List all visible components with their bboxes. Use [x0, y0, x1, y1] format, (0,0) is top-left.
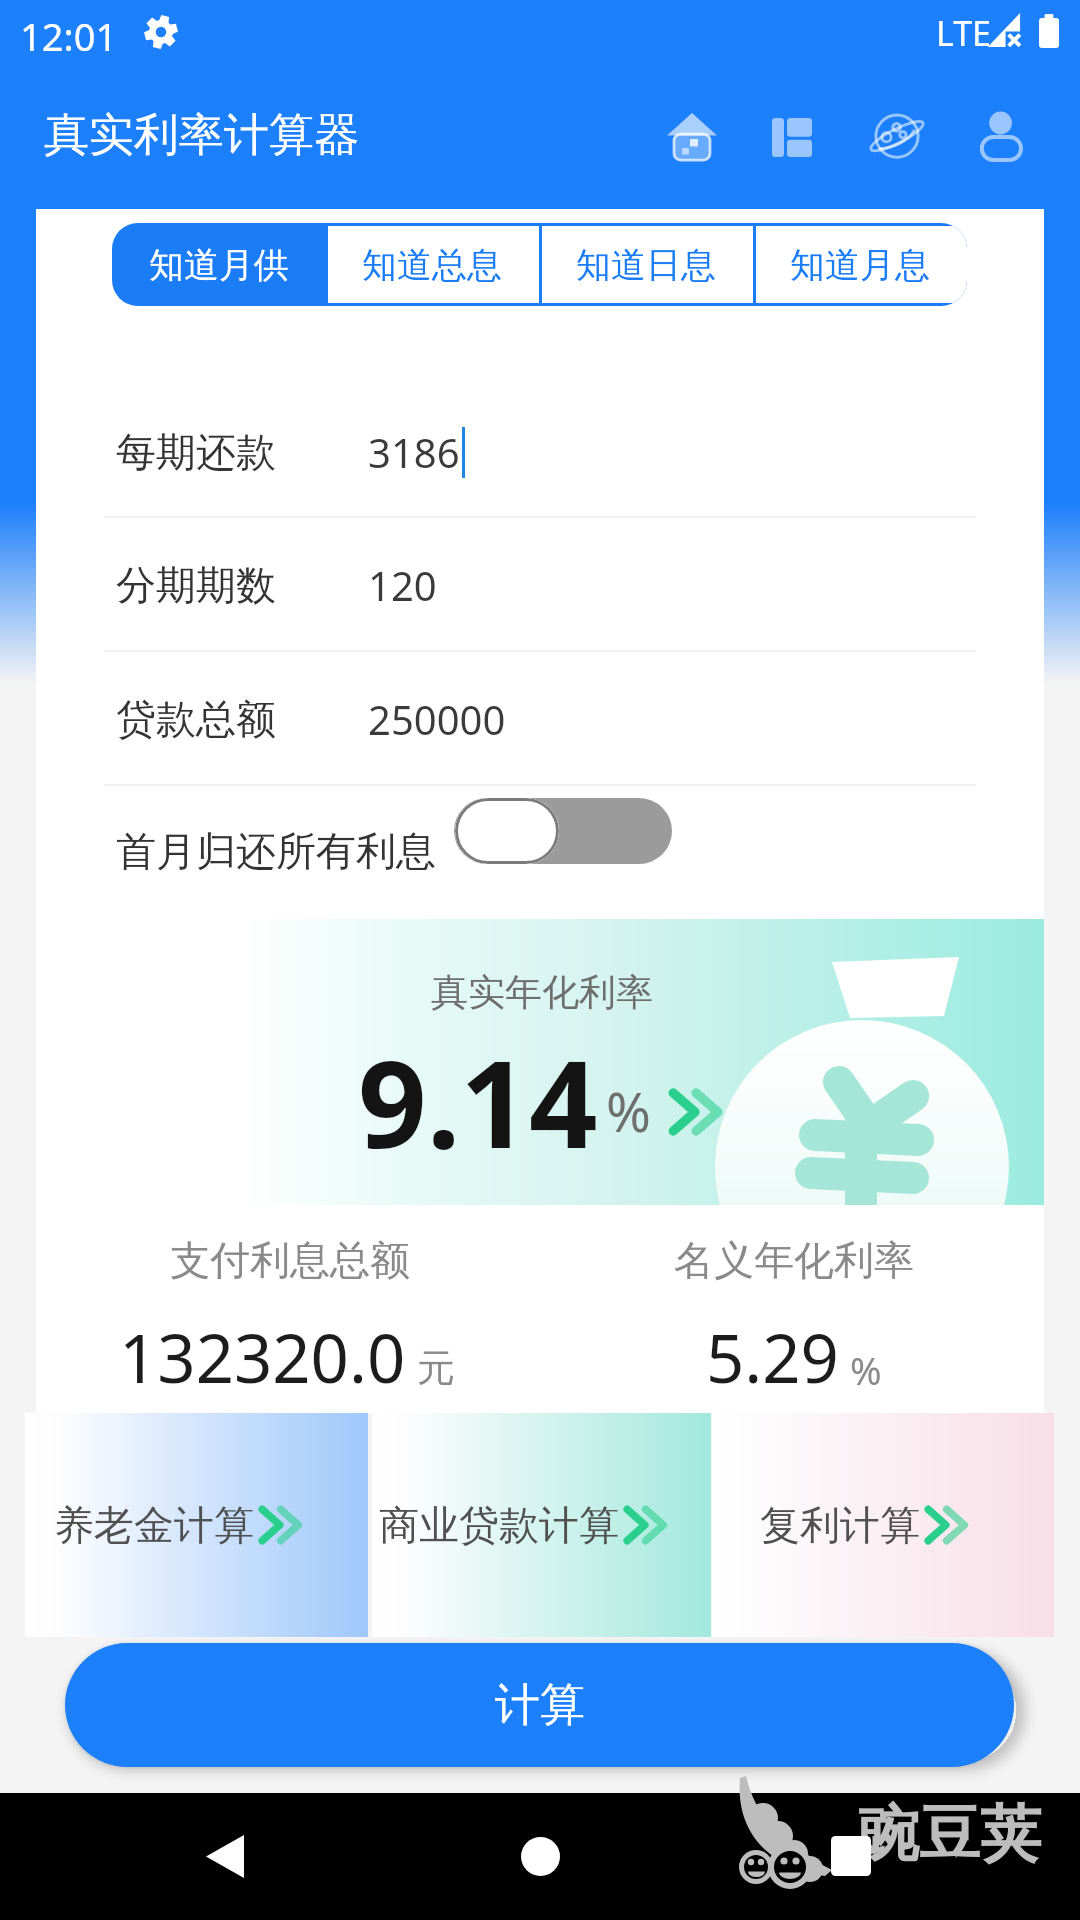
staticText: 132320.0 [119, 1311, 406, 1402]
button[interactable]: 知道日息 [539, 223, 753, 306]
button[interactable]: 商业贷款计算 [372, 1413, 711, 1637]
button[interactable]: 复利计算 [712, 1413, 1054, 1637]
button[interactable]: 发现 [863, 103, 931, 171]
staticText: 12:01 [20, 10, 118, 62]
other: 设置 [144, 15, 178, 49]
staticText: 计算 [495, 1677, 585, 1734]
staticText: 名义年化利率 [674, 1235, 914, 1285]
button[interactable]: 功能面板 [758, 103, 826, 171]
staticText: 3186 [368, 425, 460, 479]
staticText: 120 [368, 558, 437, 612]
button[interactable]: 主页 [505, 1821, 575, 1891]
staticText: 9.14 [358, 1020, 598, 1183]
staticText: LTE [936, 10, 991, 56]
staticText: 复利计算 [760, 1500, 920, 1550]
staticText: 分期期数 [116, 560, 276, 610]
button[interactable]: 知道月息 [753, 223, 967, 306]
staticText: 商业贷款计算 [379, 1500, 619, 1550]
staticText: 250000 [368, 692, 506, 746]
staticText: 真实利率计算器 [44, 107, 359, 164]
button[interactable]: 我的 [967, 103, 1035, 171]
staticText: 知道总息 [362, 243, 502, 287]
button[interactable]: 最近任务 [816, 1821, 886, 1891]
staticText: % [606, 1074, 651, 1148]
staticText: 知道日息 [576, 243, 716, 287]
staticText: 支付利息总额 [170, 1235, 410, 1285]
staticText: 真实年化利率 [431, 969, 653, 1016]
button[interactable]: 首页 [658, 103, 726, 171]
button[interactable]: 养老金计算 [25, 1413, 368, 1637]
staticText: 首月归还所有利息 [116, 826, 436, 876]
staticText: 每期还款 [116, 427, 276, 477]
staticText: 元 [417, 1344, 455, 1392]
staticText: 贷款总额 [116, 694, 276, 744]
button[interactable]: 计算 [65, 1643, 1014, 1767]
staticText: 知道月供 [149, 243, 289, 287]
staticText: 5.29 [706, 1311, 839, 1402]
button[interactable]: 返回 [190, 1821, 260, 1891]
button[interactable]: 知道月供 [112, 223, 325, 306]
button[interactable]: 首月归还所有利息 开关 [454, 798, 672, 864]
staticText: 知道月息 [790, 243, 930, 287]
button[interactable]: 知道总息 [325, 223, 539, 306]
staticText: 豌豆荚 [858, 1796, 1041, 1873]
staticText: 养老金计算 [54, 1500, 254, 1550]
staticText: % [850, 1344, 882, 1396]
